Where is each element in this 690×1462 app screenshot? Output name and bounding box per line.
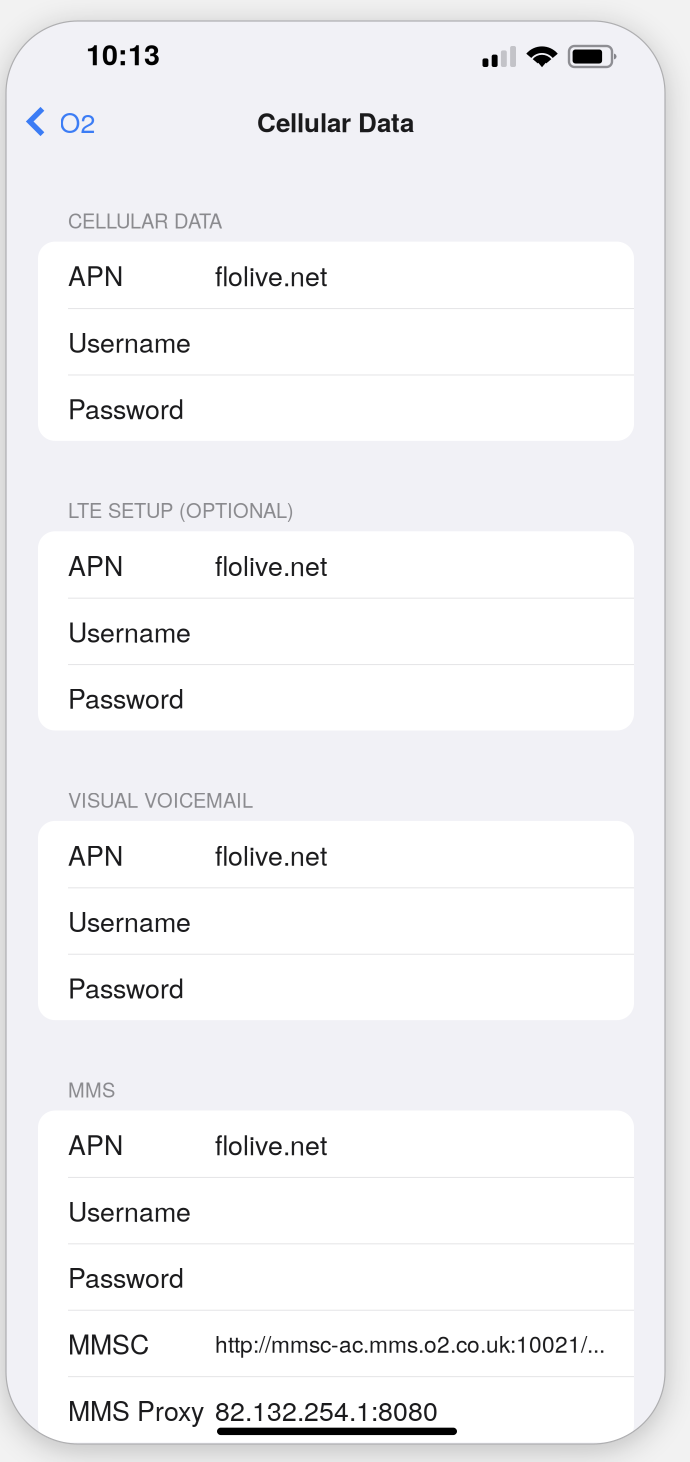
staticText: Password [68,968,184,1006]
staticText: APN [68,1125,123,1163]
staticText: APN [68,835,123,873]
button[interactable]: MMS Proxy [38,1376,634,1443]
staticText: flolive.net [215,545,327,584]
button[interactable]: APN [38,1111,634,1177]
button[interactable]: Password [38,664,634,730]
button[interactable]: Username [38,308,634,374]
staticText: 82.132.254.1:8080 [215,1390,438,1428]
button[interactable]: Username [38,598,634,664]
staticText: MMS Proxy [68,1390,204,1428]
staticText: O2 [60,102,96,141]
button[interactable]: Username [38,887,634,954]
staticText: Username [68,322,191,360]
staticText: flolive.net [215,256,327,294]
staticText: Cellular Data [257,103,414,140]
button[interactable]: Password [38,954,634,1020]
staticText: 10:13 [86,33,160,74]
staticText: http://mmsc-ac.mms.o2.co.uk:10021/... [215,1327,605,1359]
staticText: Username [68,612,191,650]
staticText: APN [68,256,123,294]
button[interactable]: O2 [6,93,110,149]
button[interactable]: Password [38,374,634,441]
staticText: flolive.net [215,835,327,873]
button[interactable]: APN [38,242,634,308]
button[interactable]: Password [38,1243,634,1310]
button[interactable]: APN [38,821,634,887]
staticText: MMSC [68,1324,149,1362]
staticText: MMS [68,1074,115,1103]
button[interactable]: MMSC [38,1310,634,1376]
staticText: flolive.net [215,1125,327,1163]
staticText: Username [68,901,191,940]
staticText: LTE SETUP (OPTIONAL) [68,495,294,524]
staticText: Username [68,1191,191,1229]
button[interactable]: APN [38,531,634,598]
staticText: APN [68,545,123,584]
staticText: CELLULAR DATA [68,205,222,234]
staticText: Password [68,1257,184,1296]
button[interactable]: Username [38,1177,634,1243]
staticText: Password [68,388,184,427]
staticText: Password [68,678,184,716]
staticText: VISUAL VOICEMAIL [68,785,253,813]
